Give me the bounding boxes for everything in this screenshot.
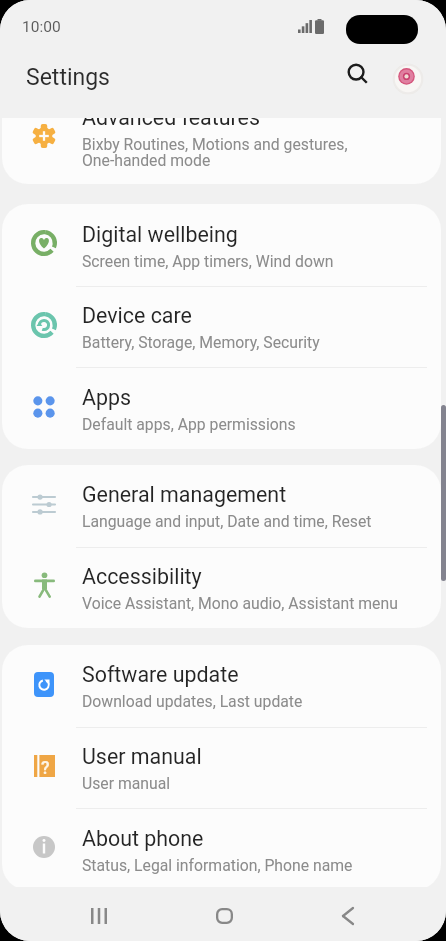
staticText: Download updates, Last update [82,692,303,710]
button[interactable] [2,204,441,286]
button[interactable] [2,645,441,727]
staticText: Accessibility [82,564,202,589]
button[interactable]: Profile [389,60,427,98]
button[interactable] [2,726,441,808]
staticText: User manual [82,774,171,792]
button[interactable] [2,465,441,547]
staticText: Digital wellbeing [82,222,238,247]
staticText: Screen time, App timers, Wind down [82,252,334,270]
button[interactable]: Home [187,889,261,941]
staticText: Settings [26,64,110,91]
button[interactable]: Back [311,889,385,941]
staticText: Voice Assistant, Mono audio, Assistant m… [82,594,398,612]
staticText: Bixby Routines, Motions and gestures, On… [82,135,348,170]
staticText: Software update [82,662,239,687]
staticText: Status, Legal information, Phone name [82,856,353,874]
button[interactable]: Search [336,52,380,96]
button[interactable] [2,808,441,887]
button[interactable]: Recents [62,889,136,941]
button[interactable] [2,286,441,368]
staticText: Battery, Storage, Memory, Security [82,333,320,351]
staticText: Default apps, App permissions [82,415,296,433]
staticText: Device care [82,303,192,328]
staticText: General management [82,482,287,507]
staticText: Apps [82,385,132,410]
staticText: About phone [82,826,204,851]
staticText: Language and input, Date and time, Reset [82,512,372,530]
staticText: Advanced features [82,118,260,130]
button[interactable] [2,118,441,184]
staticText: User manual [82,744,202,769]
button[interactable] [2,546,441,628]
staticText: 10:00 [22,18,61,36]
button[interactable] [2,367,441,449]
staticText: ? [41,758,50,779]
